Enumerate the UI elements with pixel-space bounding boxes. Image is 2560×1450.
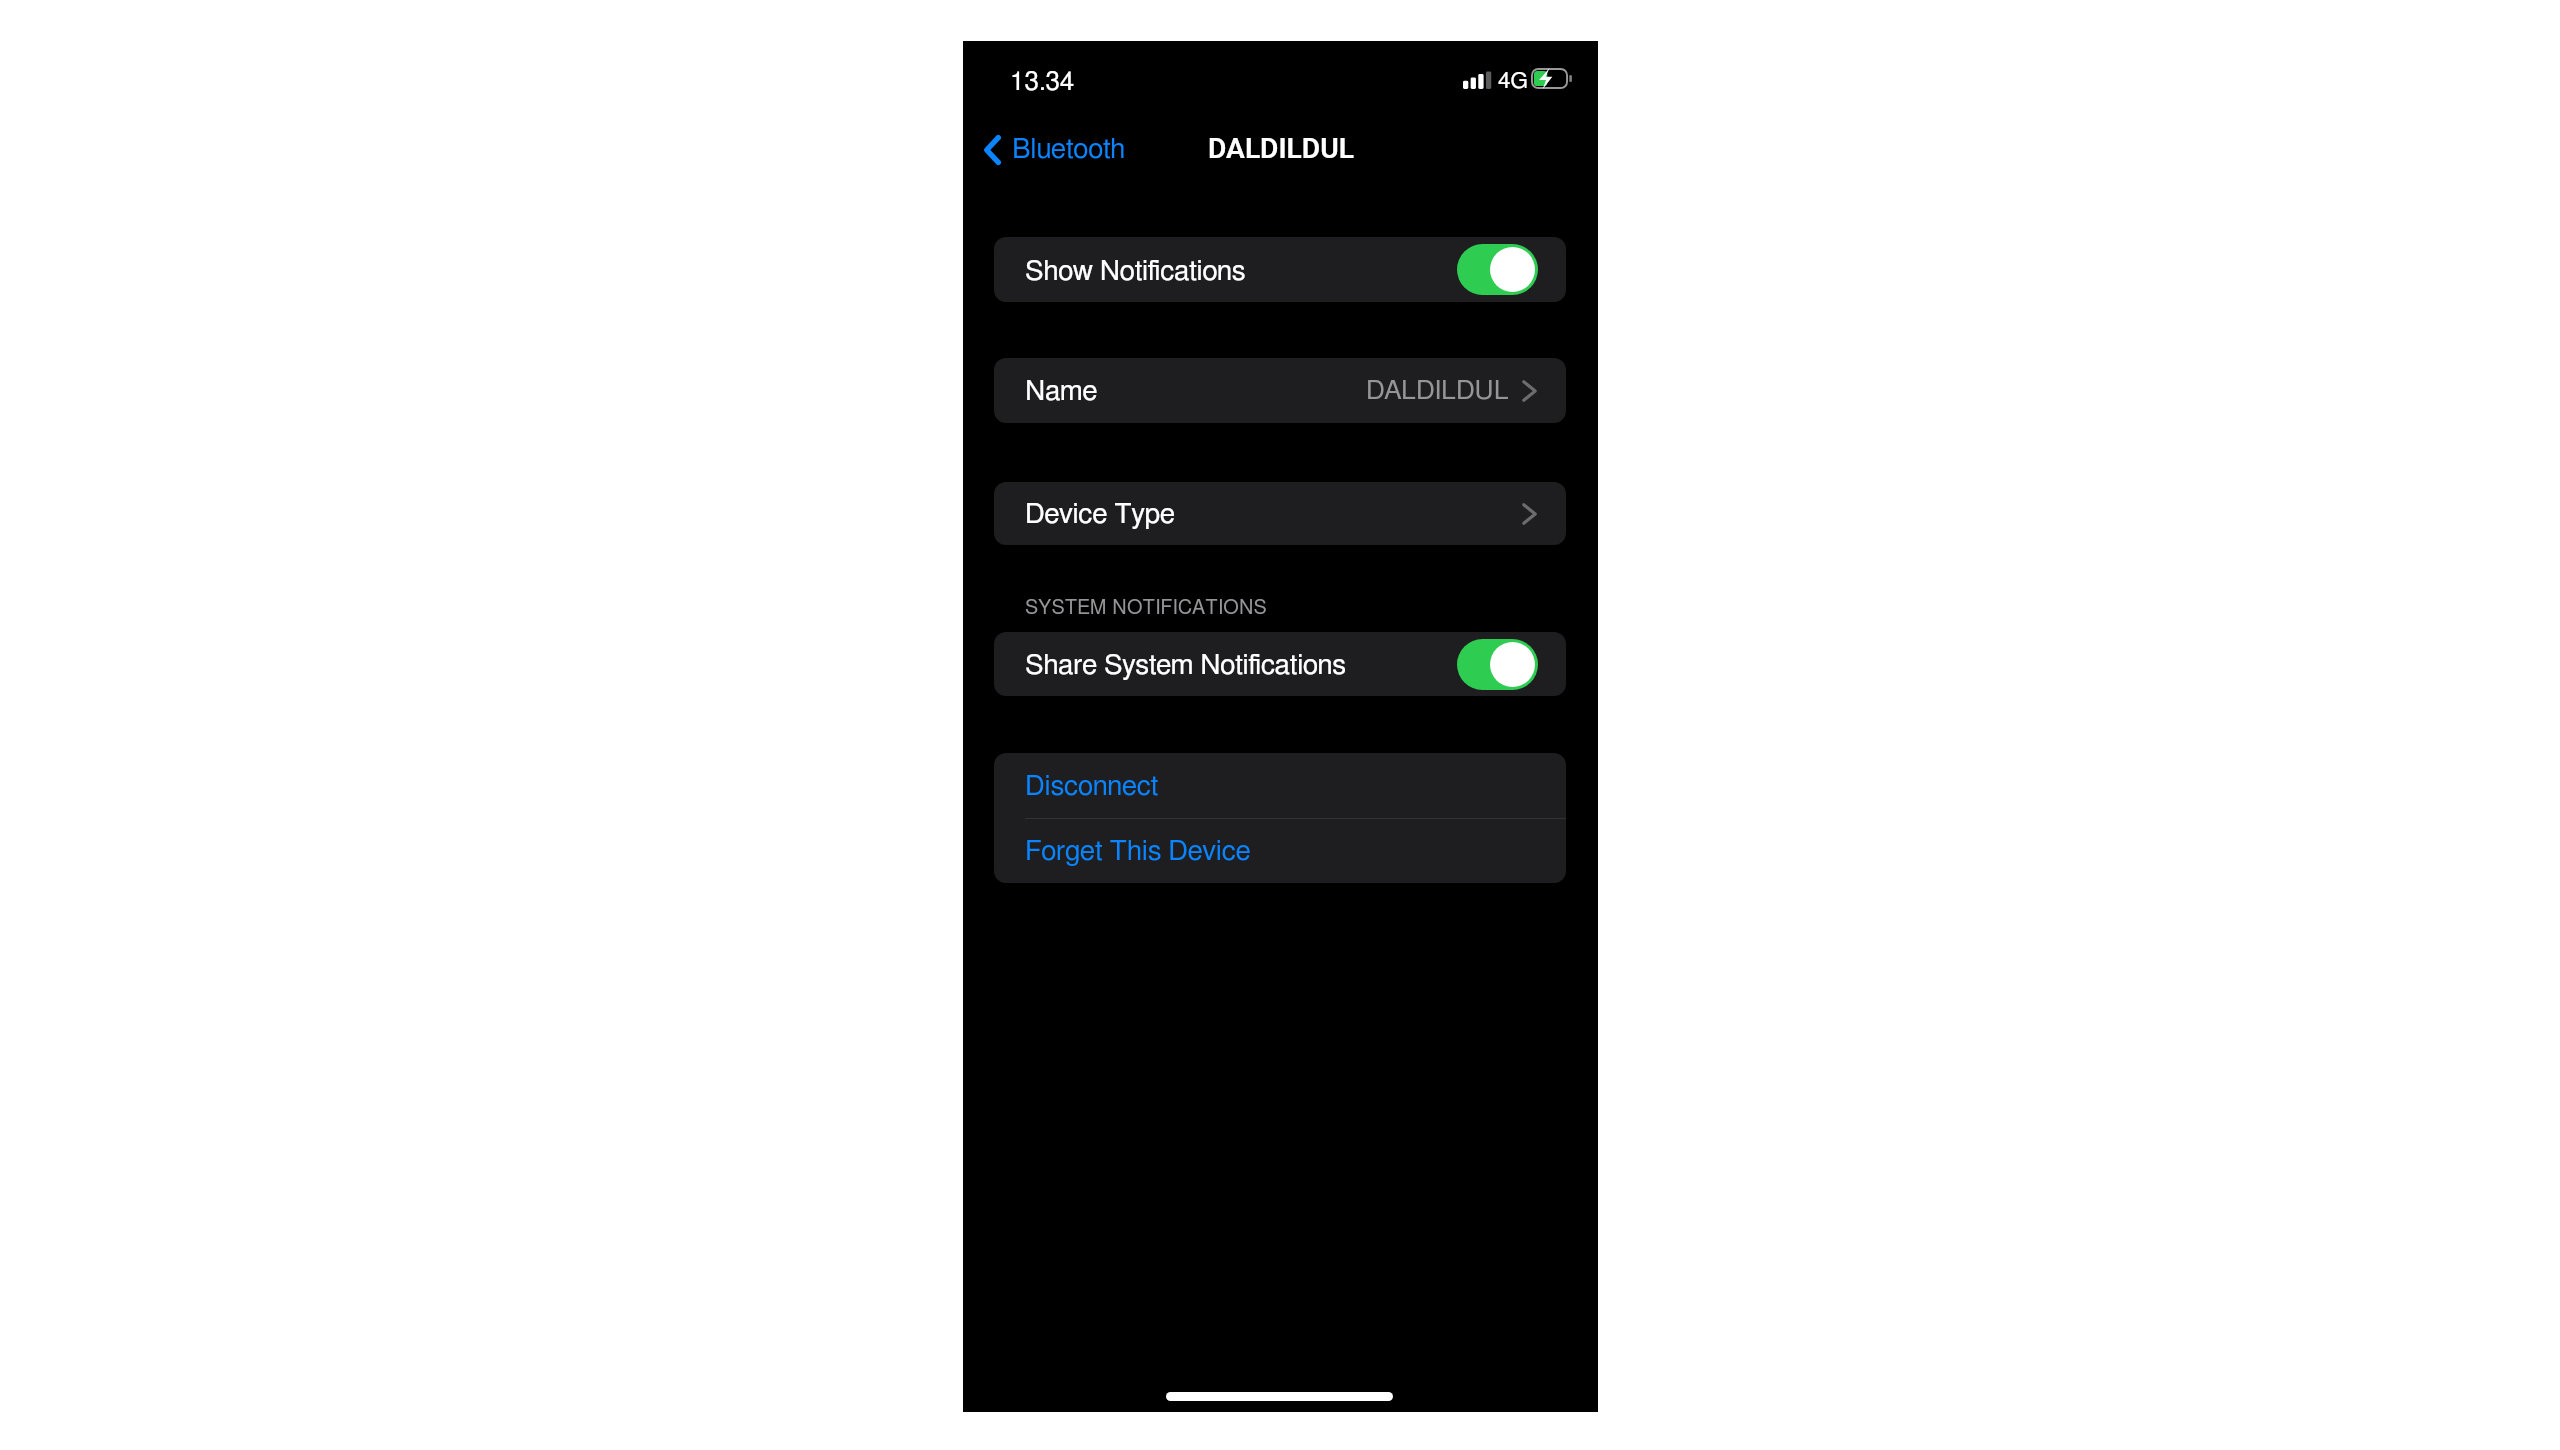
staticText: 4G bbox=[1498, 70, 1528, 93]
staticText: Show Notifications bbox=[1025, 258, 1246, 286]
staticText: SYSTEM NOTIFICATIONS bbox=[1025, 598, 1268, 618]
button[interactable]: Forget This Device bbox=[994, 818, 1566, 883]
button[interactable]: Name bbox=[994, 358, 1566, 423]
button[interactable]: Share System Notifications bbox=[994, 632, 1566, 696]
button[interactable]: Show Notifications bbox=[994, 237, 1566, 302]
staticText: Name bbox=[1025, 378, 1098, 406]
button[interactable]: Disconnect bbox=[994, 753, 1566, 818]
staticText: DALDILDUL bbox=[1366, 378, 1509, 405]
staticText: Device Type bbox=[1025, 501, 1175, 529]
staticText: Share System Notifications bbox=[1025, 652, 1346, 680]
staticText: Forget This Device bbox=[1025, 838, 1251, 866]
staticText: Disconnect bbox=[1025, 773, 1159, 801]
button[interactable]: Show Notifications, on bbox=[1457, 244, 1538, 295]
staticText: Bluetooth bbox=[1012, 136, 1126, 164]
staticText: 13.34 bbox=[1010, 69, 1075, 95]
button[interactable]: Back to Bluetooth bbox=[980, 128, 1126, 172]
staticText: DALDILDUL bbox=[1208, 132, 1354, 165]
button[interactable]: Share System Notifications, on bbox=[1457, 639, 1538, 690]
button[interactable]: Device Type bbox=[994, 482, 1566, 545]
